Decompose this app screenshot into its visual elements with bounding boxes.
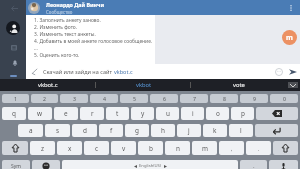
button[interactable]: Emoji <box>273 66 284 77</box>
button[interactable]: q <box>2 107 26 120</box>
staticText: 2. Изменить фото. <box>34 24 78 31</box>
button[interactable]: 7 <box>180 94 208 103</box>
staticText: 5 <box>133 95 136 102</box>
staticText: vkbot.c <box>114 68 133 75</box>
button[interactable]: f <box>99 124 123 137</box>
button[interactable]: s <box>45 124 70 137</box>
staticText: r <box>91 109 94 118</box>
button[interactable]: x <box>57 141 82 155</box>
staticText: s <box>56 126 60 135</box>
button[interactable]: e <box>54 107 78 120</box>
button[interactable]: Period <box>240 160 267 169</box>
button[interactable]: o <box>206 107 229 120</box>
button[interactable]: vote <box>191 79 286 91</box>
staticText: , <box>231 145 233 152</box>
staticText: b <box>149 144 153 153</box>
staticText: a <box>29 126 33 135</box>
button[interactable]: l <box>229 124 253 137</box>
staticText: f <box>110 126 113 135</box>
button[interactable]: y <box>131 107 154 120</box>
button[interactable]: More options <box>285 2 297 14</box>
button[interactable]: 1 <box>2 94 29 103</box>
button[interactable]: Emoji <box>32 160 60 169</box>
button[interactable]: c <box>84 141 109 155</box>
button[interactable]: h <box>151 124 175 137</box>
button[interactable]: , <box>219 141 244 155</box>
staticText: j <box>188 126 190 135</box>
staticText: u <box>166 109 170 118</box>
staticText: m <box>286 33 293 43</box>
staticText: c <box>95 144 99 153</box>
staticText: English(US) <box>139 163 162 169</box>
button[interactable]: a <box>18 124 43 137</box>
staticText: p <box>241 109 245 118</box>
staticText: v <box>122 144 126 153</box>
button[interactable]: j <box>177 124 201 137</box>
staticText: h <box>161 126 165 135</box>
button[interactable]: 5 <box>120 94 148 103</box>
staticText: x <box>68 144 72 153</box>
button[interactable]: d <box>72 124 97 137</box>
staticText: 8 <box>223 95 226 102</box>
button[interactable]: m <box>192 141 217 155</box>
staticText: Sym <box>11 163 21 169</box>
button[interactable]: g <box>125 124 149 137</box>
staticText: m <box>202 144 208 153</box>
button[interactable]: i <box>181 107 204 120</box>
button[interactable]: t <box>106 107 129 120</box>
button[interactable]: 9 <box>240 94 268 103</box>
button[interactable]: u <box>156 107 179 120</box>
button[interactable]: Notifications <box>9 57 20 68</box>
staticText: 1 <box>14 95 17 102</box>
button[interactable]: Voice input <box>269 160 298 169</box>
button[interactable]: Enter <box>255 124 298 137</box>
button[interactable]: z <box>30 141 55 155</box>
staticText: e <box>64 109 68 118</box>
button[interactable]: Sym <box>2 160 30 169</box>
button[interactable]: 6 <box>150 94 178 103</box>
button[interactable]: Shift <box>273 141 298 155</box>
staticText: vkbot.c <box>38 81 58 89</box>
button[interactable]: p <box>231 107 254 120</box>
staticText: 6 <box>163 95 166 102</box>
button[interactable]: 4 <box>90 94 118 103</box>
button[interactable]: v <box>111 141 136 155</box>
staticText: 9 <box>253 95 256 102</box>
button[interactable]: Back <box>9 3 19 13</box>
staticText: o <box>216 109 220 118</box>
button[interactable]: Send <box>287 66 298 77</box>
button[interactable]: Shift <box>2 141 28 155</box>
button[interactable]: Attach <box>30 67 39 76</box>
button[interactable]: Expand suggestions <box>288 82 298 88</box>
button[interactable]: vkbot.c <box>0 79 96 91</box>
staticText: Леонардо Дай Винчи <box>46 1 104 8</box>
button[interactable]: 3 <box>60 94 88 103</box>
staticText: w <box>37 109 43 118</box>
staticText: i <box>192 109 194 118</box>
button[interactable]: k <box>203 124 227 137</box>
staticText: t <box>116 109 119 118</box>
button[interactable]: . <box>246 141 271 155</box>
button[interactable]: 0 <box>270 94 298 103</box>
staticText: 2 <box>43 95 46 102</box>
button[interactable]: w <box>28 107 52 120</box>
staticText: z <box>41 144 45 153</box>
staticText: Сообщество <box>46 9 73 15</box>
button[interactable]: Backspace <box>256 107 298 120</box>
button[interactable]: 2 <box>31 94 58 103</box>
staticText: vkbot <box>136 81 152 89</box>
button[interactable]: r <box>80 107 104 120</box>
button[interactable]: 8 <box>210 94 238 103</box>
staticText: y <box>141 109 145 118</box>
button[interactable]: Account <box>6 21 20 35</box>
staticText: Скачай или зайди на сайт <box>43 68 114 75</box>
button[interactable]: vkbot <box>96 79 191 91</box>
staticText: 1. Заполнить анкету заново. <box>34 17 101 24</box>
staticText: n <box>176 144 180 153</box>
button[interactable]: n <box>165 141 190 155</box>
button[interactable]: Space <box>62 160 238 169</box>
staticText: l <box>240 126 242 135</box>
button[interactable]: b <box>138 141 163 155</box>
staticText: k <box>213 126 217 135</box>
button[interactable]: Chats <box>8 42 19 53</box>
